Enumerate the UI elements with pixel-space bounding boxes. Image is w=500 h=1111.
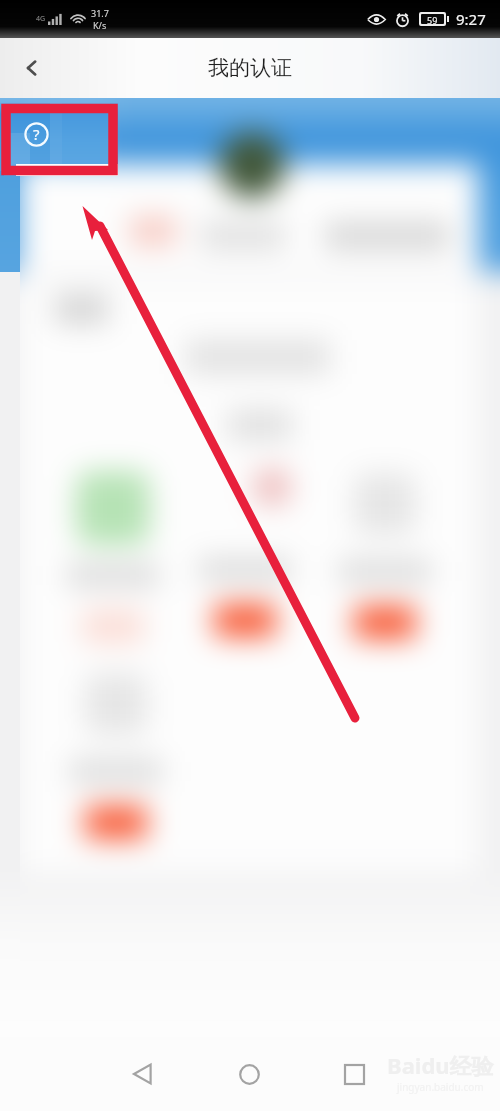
- staticText: K/s: [93, 19, 107, 31]
- button[interactable]: Back: [8, 44, 56, 92]
- staticText: Baidu经验: [387, 1050, 494, 1080]
- button[interactable]: 学历认证: [183, 450, 307, 640]
- staticText: 4G: [36, 14, 46, 24]
- staticText: 9:27: [456, 9, 486, 29]
- button[interactable]: 实名认证: [51, 456, 175, 646]
- staticText: ?: [33, 124, 40, 144]
- staticText: 59: [427, 14, 438, 24]
- button[interactable]: Recents: [326, 1046, 382, 1102]
- button[interactable]: 企业认证: [54, 652, 178, 842]
- staticText: jingyan.baidu.com: [397, 1080, 484, 1094]
- button[interactable]: 职业认证: [323, 452, 447, 642]
- staticText: 31.7: [91, 7, 109, 19]
- button[interactable]: Help: [24, 122, 49, 147]
- button[interactable]: Home: [221, 1046, 277, 1102]
- button[interactable]: Back: [115, 1046, 171, 1102]
- staticText: 我的认证: [208, 55, 292, 81]
